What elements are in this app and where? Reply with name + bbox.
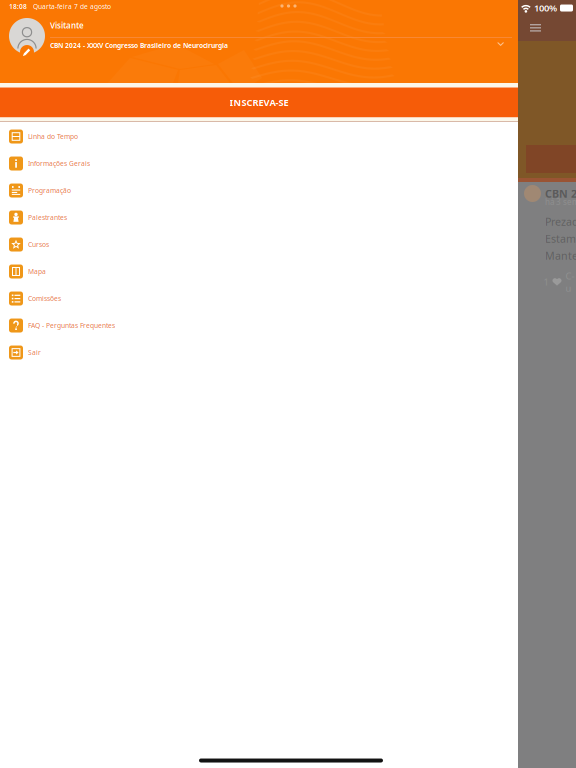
staticText: há 3 sema: [545, 196, 576, 207]
button[interactable]: INSCREVA-SE: [0, 87, 518, 117]
button[interactable]: Sair: [0, 339, 518, 366]
button[interactable]: FAQ - Perguntas Frequentes: [0, 312, 518, 339]
staticText: Programação: [28, 186, 71, 195]
button[interactable]: Cursos: [0, 231, 518, 258]
staticText: Palestrantes: [28, 213, 67, 222]
staticText: Prezado: [545, 214, 576, 229]
staticText: Mantenha: [545, 248, 576, 263]
staticText: Estamos: [545, 231, 576, 246]
staticText: Comissões: [28, 294, 61, 303]
staticText: Cu: [565, 270, 574, 294]
button[interactable]: Programação: [0, 177, 518, 204]
staticText: Sair: [28, 348, 41, 357]
staticText: 1: [543, 276, 548, 288]
staticText: Quarta-feira 7 de agosto: [33, 2, 111, 11]
staticText: Informações Gerais: [28, 159, 90, 168]
button[interactable]: Comissões: [0, 285, 518, 312]
staticText: CBN 202: [545, 186, 576, 201]
staticText: INSCREVA-SE: [229, 96, 288, 109]
staticText: 18:08: [9, 2, 27, 11]
staticText: Mapa: [28, 267, 46, 276]
staticText: Visitante: [50, 20, 84, 31]
staticText: CBN 2024 - XXXV Congresso Brasileiro de …: [50, 41, 228, 50]
button[interactable]: Linha do Tempo: [0, 123, 518, 150]
staticText: Cursos: [28, 240, 49, 249]
button[interactable]: Mapa: [0, 258, 518, 285]
staticText: FAQ - Perguntas Frequentes: [28, 321, 115, 330]
button[interactable]: Informações Gerais: [0, 150, 518, 177]
button[interactable]: Palestrantes: [0, 204, 518, 231]
staticText: 100%: [534, 2, 557, 14]
staticText: Linha do Tempo: [28, 132, 78, 141]
